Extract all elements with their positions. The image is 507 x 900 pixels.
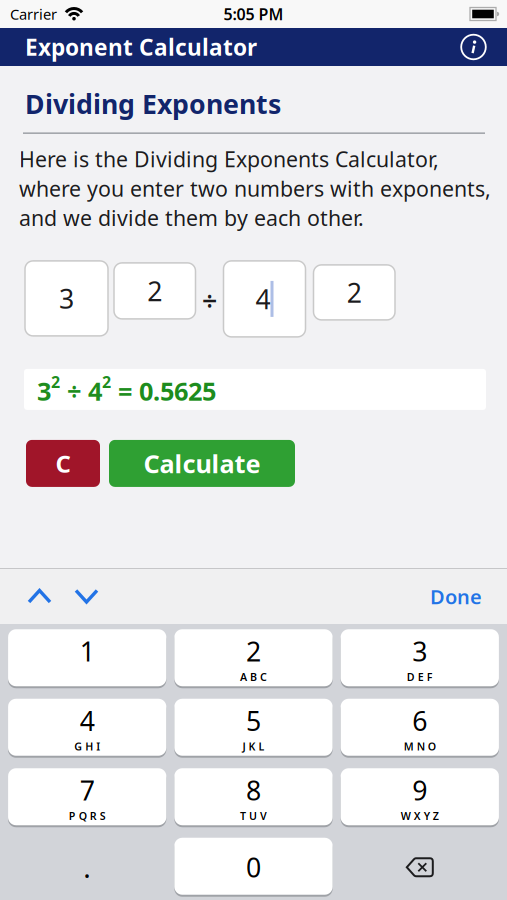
staticText: A B C — [240, 670, 267, 684]
button[interactable]: Delete — [341, 838, 499, 896]
staticText: ÷ — [202, 283, 217, 318]
staticText: 3 — [412, 633, 427, 669]
staticText: . — [83, 849, 91, 886]
button[interactable]: Next field — [74, 588, 99, 604]
staticText: T U V — [240, 809, 267, 823]
button[interactable]: Clear — [26, 440, 100, 487]
staticText: Done — [430, 583, 482, 610]
button[interactable]: 2 — [174, 629, 333, 688]
button[interactable]: Calculate — [109, 440, 295, 487]
staticText: Exponent Calculator — [25, 32, 257, 62]
staticText: = 0.5625 — [111, 374, 216, 408]
button[interactable]: Decimal point — [8, 838, 166, 896]
staticText: C — [55, 447, 70, 479]
staticText: 1 — [80, 633, 95, 669]
button[interactable]: Previous field — [27, 588, 52, 604]
staticText: 2 — [51, 371, 60, 392]
button[interactable]: Done — [430, 583, 482, 610]
button[interactable]: Info — [460, 33, 487, 60]
staticText: 4 — [88, 374, 102, 408]
staticText: 2 — [246, 633, 261, 669]
staticText: 6 — [412, 703, 427, 738]
button[interactable]: 0 — [174, 838, 333, 897]
button[interactable]: 3 — [341, 629, 499, 688]
staticText: M N O — [404, 739, 436, 754]
staticText: Calculate — [143, 447, 260, 480]
button[interactable]: Number field 2 — [114, 263, 195, 319]
button[interactable]: 5 — [174, 699, 333, 758]
staticText: D E F — [407, 670, 433, 684]
button[interactable]: 1 — [8, 629, 166, 688]
button[interactable]: Number field 2 — [313, 265, 395, 320]
button[interactable]: Number field 4 — [223, 261, 305, 337]
staticText: Here is the Dividing Exponents Calculato… — [19, 145, 491, 232]
staticText: ÷ — [60, 374, 88, 408]
staticText: 4 — [255, 281, 270, 317]
staticText: P Q R S — [69, 809, 106, 823]
staticText: W X Y Z — [401, 809, 439, 823]
staticText: 2 — [147, 273, 162, 309]
staticText: 3 — [37, 374, 51, 408]
staticText: 2 — [347, 275, 362, 310]
button[interactable]: 8 — [174, 768, 333, 827]
staticText: Carrier — [10, 4, 57, 24]
staticText: G H I — [74, 739, 100, 754]
staticText: 2 — [102, 371, 111, 392]
staticText: 7 — [80, 772, 95, 808]
staticText: 9 — [412, 772, 427, 808]
staticText: 5 — [246, 703, 261, 738]
staticText: 5:05 PM — [223, 3, 283, 25]
staticText: 8 — [246, 772, 261, 808]
staticText: 0 — [246, 849, 261, 885]
button[interactable]: 7 — [8, 768, 166, 827]
button[interactable]: Number field 3 — [25, 261, 108, 336]
button[interactable]: 9 — [341, 768, 499, 827]
button[interactable]: 4 — [8, 699, 166, 758]
staticText: 4 — [80, 703, 95, 738]
staticText: J K L — [242, 739, 264, 754]
staticText: 3 — [59, 281, 74, 316]
staticText: Dividing Exponents — [25, 86, 281, 121]
button[interactable]: 6 — [341, 699, 499, 758]
